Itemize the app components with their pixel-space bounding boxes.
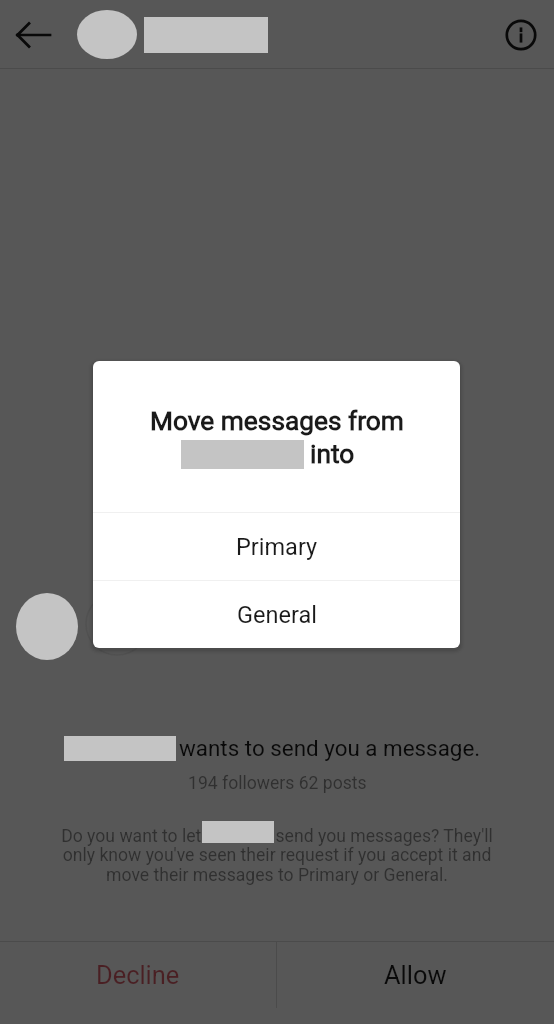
button[interactable]: Allow xyxy=(277,941,554,1008)
staticText: Primary xyxy=(236,533,318,561)
button[interactable] xyxy=(77,10,268,59)
staticText: 194 followers 62 posts xyxy=(188,773,367,794)
staticText: Do you want to let send you messages? Th… xyxy=(61,826,493,886)
staticText: General xyxy=(237,601,317,629)
button[interactable]: General xyxy=(93,581,460,648)
staticText: into xyxy=(310,439,355,470)
button[interactable]: Info xyxy=(487,0,554,69)
button[interactable]: Primary xyxy=(93,513,460,580)
staticText: wants to send you a message. xyxy=(179,735,481,761)
button[interactable]: Back xyxy=(0,0,67,69)
button[interactable]: Decline xyxy=(0,941,276,1008)
staticText: Allow xyxy=(384,960,447,990)
staticText: Decline xyxy=(96,960,180,990)
staticText: Move messages from xyxy=(150,406,404,437)
